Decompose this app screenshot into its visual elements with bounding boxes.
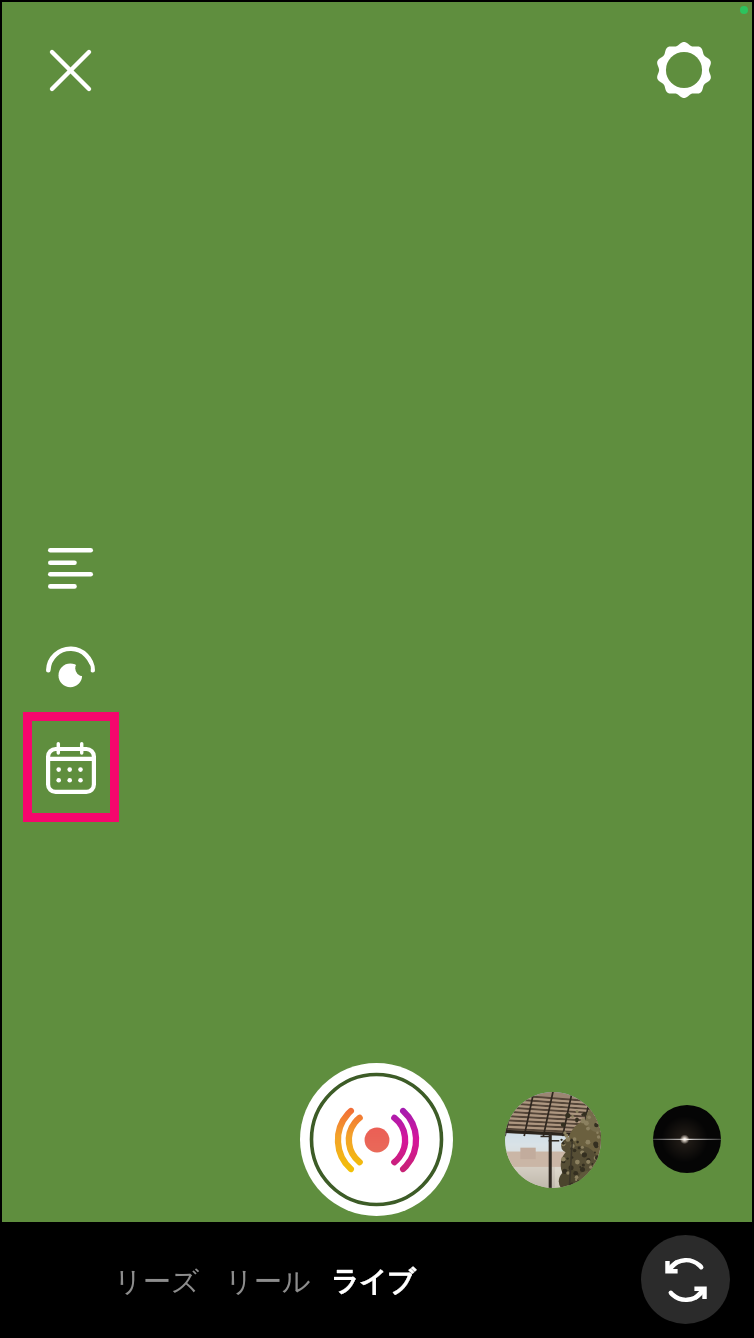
button[interactable]: リール bbox=[219, 1264, 317, 1299]
button[interactable]: Schedule bbox=[23, 712, 119, 822]
button[interactable]: Settings bbox=[650, 36, 718, 104]
button[interactable]: Night shot bbox=[653, 1105, 721, 1173]
staticText: リール bbox=[225, 1264, 311, 1299]
button[interactable]: リーズ bbox=[108, 1264, 206, 1299]
staticText: ライブ bbox=[331, 1264, 415, 1299]
button[interactable]: Flip camera bbox=[641, 1235, 730, 1324]
button[interactable]: ライブ bbox=[325, 1264, 421, 1299]
staticText: リーズ bbox=[114, 1264, 200, 1299]
button[interactable]: Close bbox=[36, 36, 104, 104]
button[interactable]: Gallery bbox=[505, 1092, 601, 1188]
button[interactable]: Go live bbox=[300, 1063, 453, 1216]
button[interactable]: Text bbox=[36, 536, 104, 600]
button[interactable]: Effects bbox=[36, 638, 104, 694]
